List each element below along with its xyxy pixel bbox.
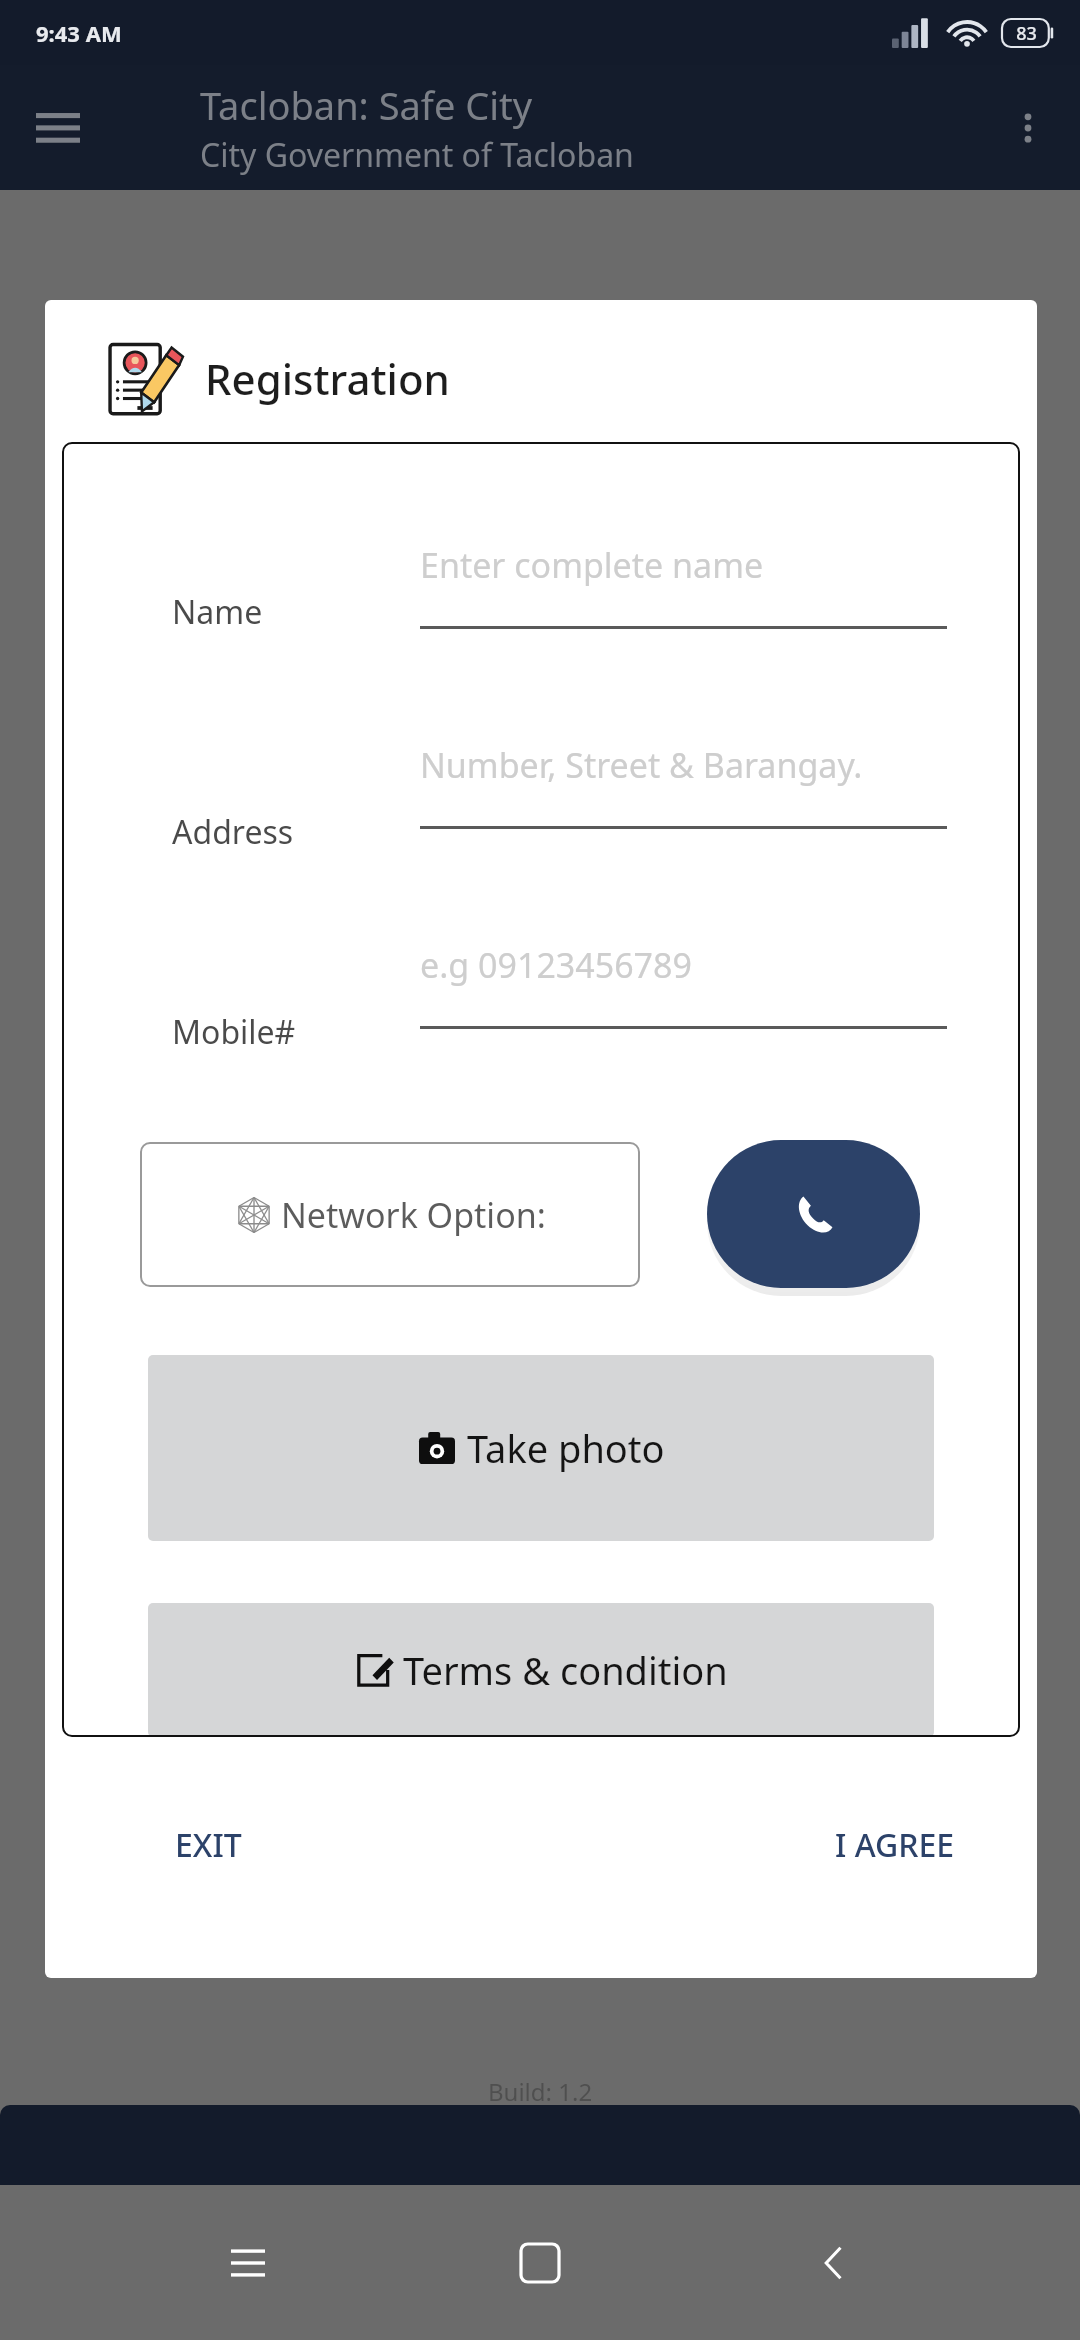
staticText: Registration <box>205 350 450 407</box>
button[interactable]: More options <box>990 90 1066 166</box>
staticText: I AGREE <box>835 1823 955 1867</box>
staticText: Network Option: <box>281 1192 546 1238</box>
staticText: Take photo <box>467 1422 665 1474</box>
staticText: City Government of Tacloban <box>200 133 634 177</box>
staticText: Mobile# <box>172 1010 296 1054</box>
button[interactable]: Call <box>707 1140 920 1288</box>
staticText: Terms & condition <box>403 1644 728 1696</box>
button[interactable]: Back <box>788 2218 878 2308</box>
button[interactable]: Take photo <box>148 1355 934 1541</box>
button[interactable]: I AGREE <box>835 1823 955 1867</box>
staticText: Address <box>172 810 294 854</box>
staticText: EXIT <box>175 1823 242 1867</box>
button[interactable]: Open navigation menu <box>26 96 90 160</box>
staticText: Enter complete name <box>420 542 764 588</box>
staticText: e.g 09123456789 <box>420 942 692 988</box>
button[interactable]: Home <box>495 2218 585 2308</box>
button[interactable]: Recent apps <box>203 2218 293 2308</box>
staticText: 83 <box>1016 21 1037 46</box>
staticText: Build: 1.2 <box>488 2075 593 2108</box>
staticText: 9:43 AM <box>36 18 122 48</box>
staticText: Tacloban: Safe City <box>200 79 533 131</box>
staticText: Name <box>172 590 263 634</box>
button[interactable]: EXIT <box>175 1823 242 1867</box>
staticText: Number, Street & Barangay. <box>420 742 863 788</box>
button[interactable]: Network Option: <box>140 1142 640 1287</box>
button[interactable]: Terms & condition <box>148 1603 934 1737</box>
